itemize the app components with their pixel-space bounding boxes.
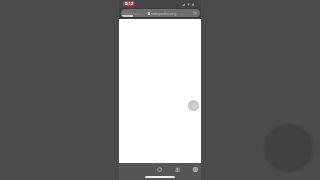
staticText: 0:12 xyxy=(125,1,134,6)
button[interactable]: Recording xyxy=(123,1,135,6)
staticText: wikipedia.org xyxy=(150,11,177,16)
button[interactable]: Reload xyxy=(157,167,162,172)
button[interactable]: Library xyxy=(175,167,180,172)
button[interactable]: Open assistant xyxy=(188,100,199,111)
button[interactable]: Wikipedia xyxy=(121,9,200,17)
button[interactable]: Tabs xyxy=(193,167,198,172)
button[interactable]: Close tab xyxy=(193,11,197,15)
staticText: Wikipedia xyxy=(122,11,141,16)
